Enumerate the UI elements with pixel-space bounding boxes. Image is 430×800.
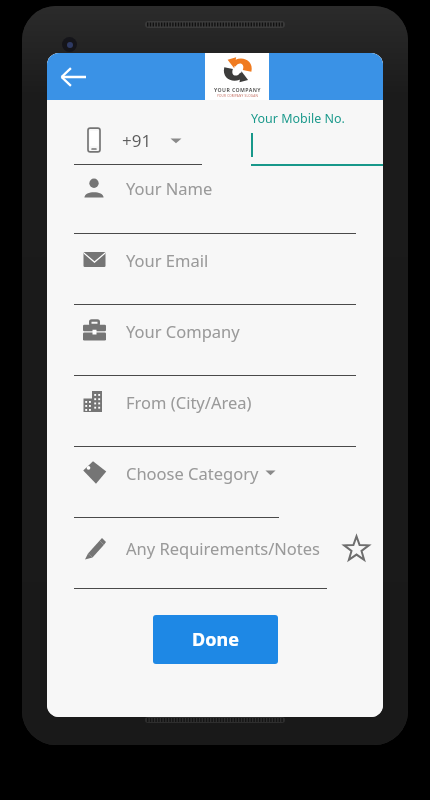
staticText: Your Email bbox=[126, 249, 209, 271]
staticText: Your Mobile No. bbox=[251, 110, 345, 127]
staticText: YOUR COMPANY bbox=[214, 86, 261, 93]
button[interactable]: From (City/Area) bbox=[47, 389, 383, 460]
button[interactable]: Done bbox=[153, 615, 278, 664]
staticText: +91 bbox=[122, 129, 152, 152]
button[interactable]: Back bbox=[47, 53, 99, 100]
button[interactable]: Your Name bbox=[47, 176, 383, 247]
button[interactable]: YOUR COMPANY bbox=[205, 53, 269, 100]
staticText: YOUR COMPANY SLOGAN bbox=[217, 94, 258, 98]
button[interactable]: Choose Category bbox=[47, 460, 383, 531]
button[interactable]: Your Email bbox=[47, 247, 383, 318]
staticText: Your Company bbox=[126, 320, 240, 342]
staticText: From (City/Area) bbox=[126, 391, 252, 413]
staticText: Your Name bbox=[126, 177, 213, 199]
staticText: Done bbox=[192, 627, 239, 652]
button[interactable]: Favourite bbox=[339, 531, 373, 565]
button[interactable]: Your Company bbox=[47, 318, 383, 389]
button[interactable]: Any Requirements/Notes bbox=[47, 531, 383, 602]
staticText: Any Requirements/Notes bbox=[126, 537, 321, 559]
staticText: Choose Category bbox=[126, 462, 259, 484]
